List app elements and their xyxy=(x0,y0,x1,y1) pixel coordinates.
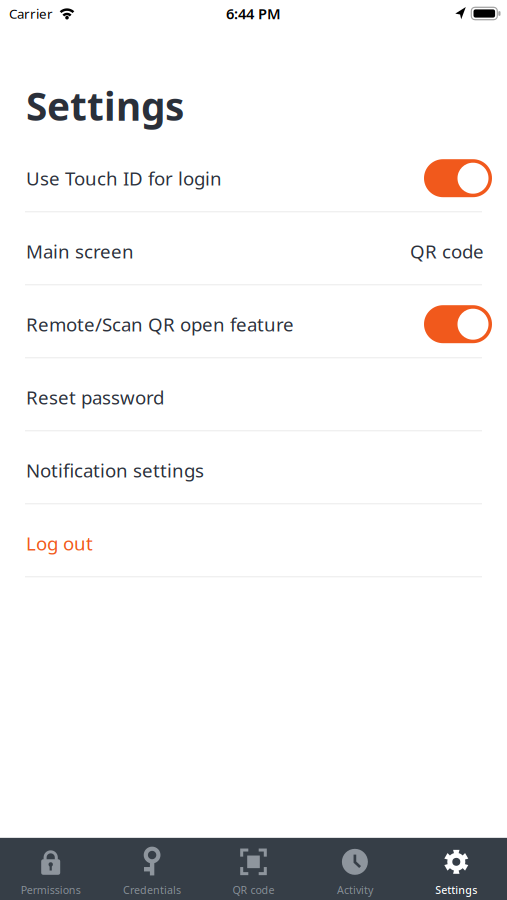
staticText: Main screen xyxy=(26,239,134,264)
button[interactable]: Main screen xyxy=(0,212,507,285)
staticText: Reset password xyxy=(26,385,164,410)
staticText: Credentials xyxy=(123,883,181,897)
button[interactable]: Use Touch ID for login xyxy=(424,159,492,197)
staticText: Remote/Scan QR open feature xyxy=(26,312,294,337)
staticText: QR code xyxy=(410,239,484,264)
button[interactable]: Notification settings xyxy=(0,431,507,504)
button[interactable]: Log out xyxy=(0,504,507,577)
button[interactable]: Credentials xyxy=(101,848,203,897)
button[interactable]: Reset password xyxy=(0,358,507,431)
staticText: Carrier xyxy=(9,5,53,22)
staticText: Use Touch ID for login xyxy=(26,166,222,191)
staticText: Activity xyxy=(337,883,373,897)
button[interactable]: Activity xyxy=(304,848,406,897)
button[interactable]: QR code xyxy=(203,848,304,897)
button[interactable]: Settings xyxy=(406,848,507,897)
staticText: 6:44 PM xyxy=(226,4,281,23)
staticText: Permissions xyxy=(21,883,81,897)
staticText: QR code xyxy=(232,883,274,897)
staticText: Log out xyxy=(26,531,93,556)
staticText: Settings xyxy=(435,883,477,897)
staticText: Notification settings xyxy=(26,458,204,483)
button[interactable]: Remote/Scan QR open feature xyxy=(424,305,492,343)
staticText: Settings xyxy=(26,80,184,131)
button[interactable]: Permissions xyxy=(0,848,101,897)
